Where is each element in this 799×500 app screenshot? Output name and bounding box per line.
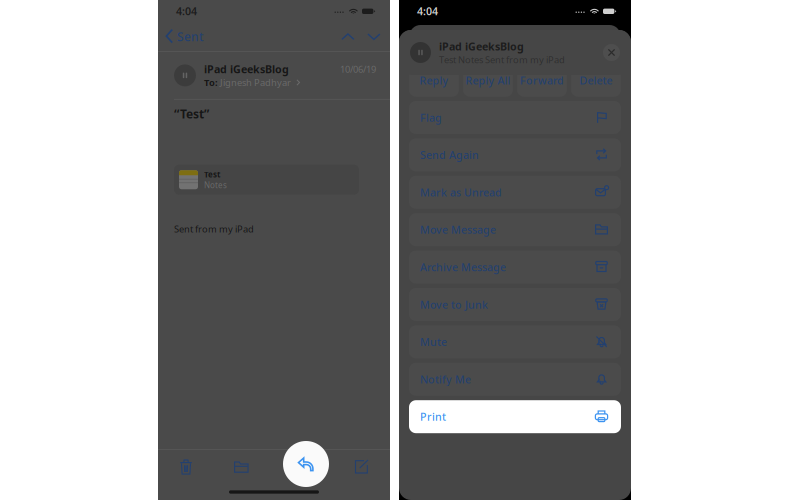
- button[interactable]: Notify Me: [409, 363, 621, 396]
- button[interactable]: Print: [409, 400, 621, 433]
- button[interactable]: Mark as Unread: [409, 176, 621, 209]
- button[interactable]: Delete: [571, 64, 621, 97]
- staticText: Flag: [420, 110, 442, 125]
- button[interactable]: Sent: [158, 22, 208, 51]
- staticText: Reply: [419, 73, 448, 87]
- staticText: “Test”: [174, 106, 209, 122]
- staticText: 4:04: [176, 4, 197, 18]
- staticText: Notify Me: [420, 372, 471, 386]
- staticText: Archive Message: [420, 260, 506, 274]
- staticText: Sent from my iPad: [174, 223, 254, 235]
- button[interactable]: Send Again: [409, 138, 621, 171]
- button[interactable]: Previous message: [335, 22, 361, 51]
- staticText: To:: [204, 76, 218, 89]
- staticText: 4:04: [417, 4, 438, 18]
- button[interactable]: Reply: [409, 64, 459, 97]
- button[interactable]: Archive Message: [409, 251, 621, 284]
- staticText: Move to Junk: [420, 297, 488, 312]
- button[interactable]: Compose: [344, 450, 380, 484]
- button[interactable]: Close: [603, 44, 620, 61]
- staticText: Jignesh Padhyar: [220, 76, 291, 89]
- staticText: Reply All: [465, 73, 510, 87]
- staticText: Forward: [520, 73, 564, 87]
- staticText: Sent: [177, 28, 204, 44]
- button[interactable]: Flag: [409, 101, 621, 134]
- staticText: Notes: [204, 180, 227, 190]
- button[interactable]: Move to Junk: [409, 288, 621, 321]
- staticText: Test: [204, 169, 220, 180]
- button[interactable]: Reply All: [463, 64, 513, 97]
- staticText: Print: [420, 410, 446, 424]
- button[interactable]: Mute: [409, 325, 621, 358]
- button[interactable]: Forward: [517, 64, 567, 97]
- staticText: iPad iGeeksBlog: [439, 39, 524, 53]
- staticText: Mark as Unread: [420, 185, 502, 199]
- staticText: Move Message: [420, 223, 496, 237]
- staticText: Send Again: [420, 148, 479, 162]
- button[interactable]: Next message: [361, 22, 387, 51]
- button[interactable]: Delete: [168, 450, 204, 484]
- staticText: Test Notes Sent from my iPad: [439, 53, 565, 66]
- button[interactable]: Move to folder: [223, 450, 259, 484]
- button[interactable]: Move Message: [409, 213, 621, 246]
- staticText: Delete: [579, 73, 612, 87]
- staticText: 10/06/19: [340, 63, 376, 75]
- staticText: iPad iGeeksBlog: [204, 62, 289, 76]
- button[interactable]: Reply: [283, 441, 329, 487]
- staticText: Mute: [420, 335, 447, 349]
